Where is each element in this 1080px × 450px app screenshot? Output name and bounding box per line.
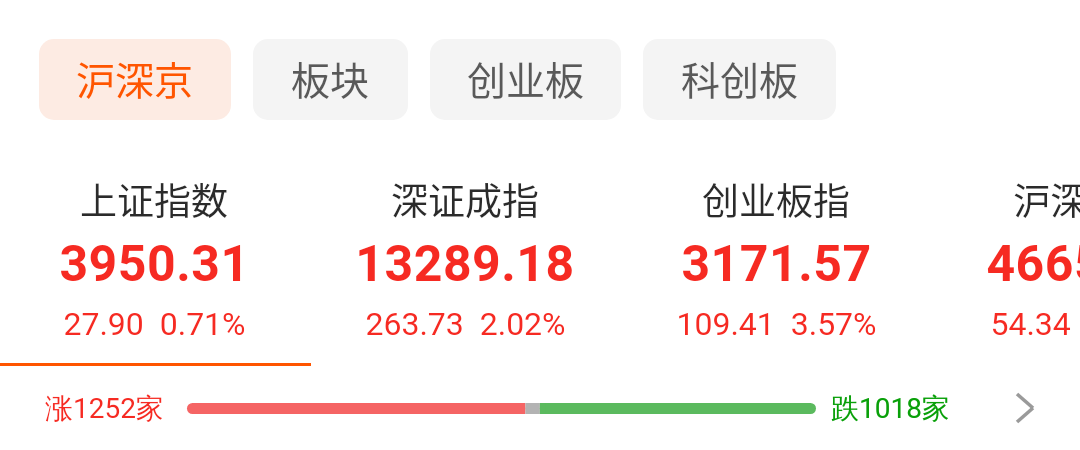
- button[interactable]: 创业板: [430, 39, 621, 120]
- staticText: 科创板: [681, 50, 799, 106]
- staticText: 深证成指: [391, 172, 539, 226]
- staticText: 沪深300: [1013, 172, 1080, 226]
- staticText: 板块: [291, 50, 370, 106]
- button[interactable]: 板块: [253, 39, 408, 120]
- button[interactable]: 上证指数: [0, 172, 324, 343]
- staticText: 跌1018家: [831, 391, 950, 426]
- staticText: 3171.57: [681, 235, 872, 294]
- staticText: 263.73 2.02%: [365, 305, 566, 343]
- button[interactable]: 深证成指: [295, 172, 635, 343]
- button[interactable]: 涨1252家: [0, 366, 1001, 450]
- button[interactable]: 沪深300: [911, 172, 1080, 343]
- staticText: 上证指数: [80, 172, 228, 226]
- button[interactable]: 科创板: [643, 39, 836, 120]
- button[interactable]: 沪深京: [39, 39, 231, 120]
- staticText: 创业板: [467, 50, 585, 106]
- button[interactable]: 创业板指: [606, 172, 946, 343]
- staticText: 13289.18: [355, 235, 575, 294]
- button[interactable]: More market breadth details: [1001, 384, 1049, 432]
- staticText: 创业板指: [702, 172, 850, 226]
- staticText: 3950.31: [59, 235, 250, 294]
- staticText: 109.41 3.57%: [676, 305, 877, 343]
- staticText: 27.90 0.71%: [63, 305, 246, 343]
- staticText: 4665.43: [986, 235, 1080, 294]
- staticText: 涨1252家: [45, 391, 164, 426]
- staticText: 54.34 1.18%: [990, 305, 1080, 343]
- staticText: 沪深京: [76, 50, 194, 106]
